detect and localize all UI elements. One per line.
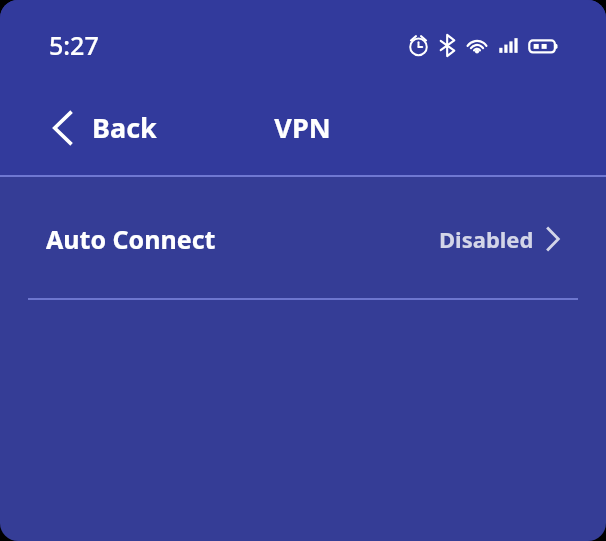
- staticText: 5:27: [49, 28, 99, 62]
- staticText: Back: [92, 109, 157, 146]
- staticText: VPN: [274, 109, 331, 146]
- button[interactable]: Back: [40, 101, 167, 154]
- staticText: Auto Connect: [46, 222, 216, 256]
- button[interactable]: Auto Connect: [0, 177, 606, 300]
- staticText: Disabled: [439, 224, 534, 254]
